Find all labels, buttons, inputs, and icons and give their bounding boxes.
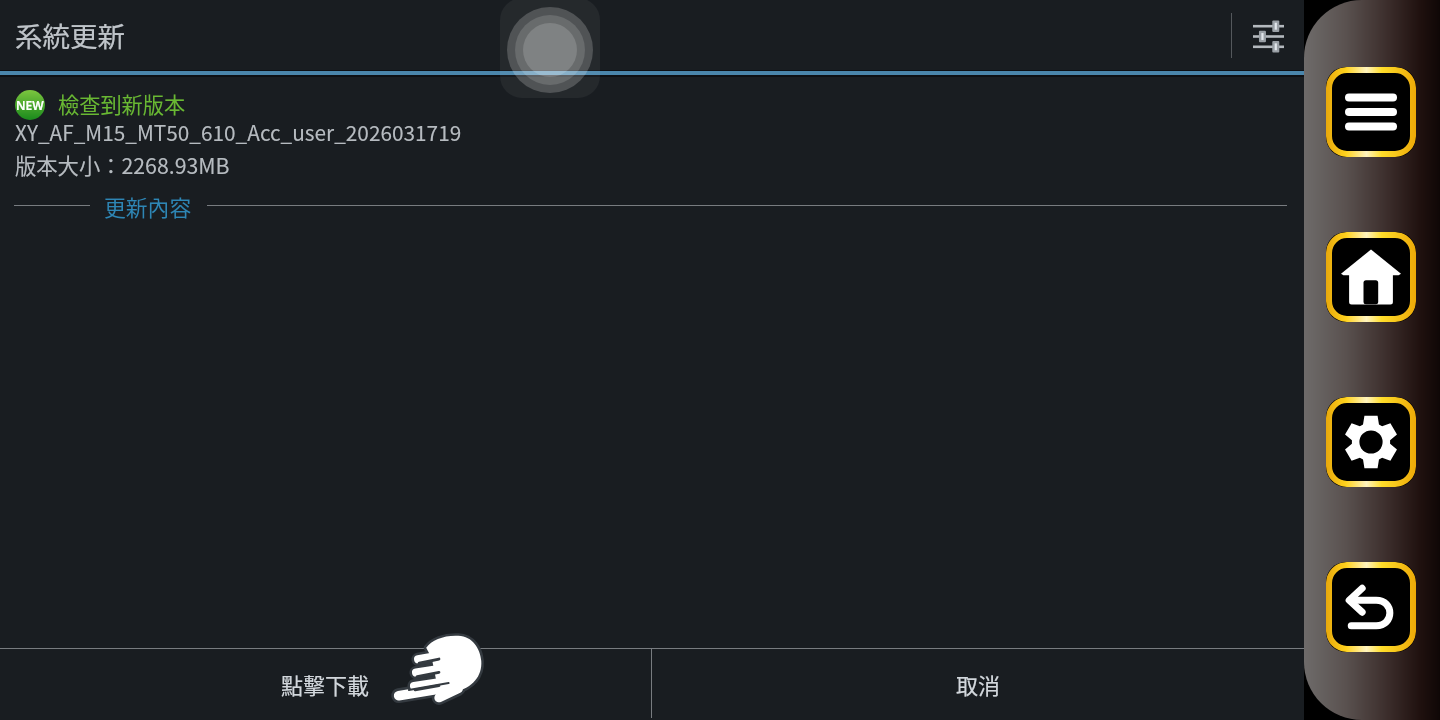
- staticText: 取消: [956, 668, 1001, 700]
- button[interactable]: 點擊下載: [0, 649, 651, 718]
- button[interactable]: Back: [1326, 562, 1416, 652]
- staticText: 系統更新: [15, 15, 125, 55]
- staticText: XY_AF_M15_MT50_610_Acc_user_2026031719: [15, 117, 462, 147]
- button[interactable]: Home: [1326, 232, 1416, 322]
- button[interactable]: 取消: [652, 649, 1304, 718]
- staticText: 更新內容: [104, 191, 192, 219]
- button[interactable]: Menu: [1326, 67, 1416, 157]
- staticText: 版本大小：2268.93MB: [15, 149, 230, 180]
- staticText: 點擊下載: [281, 668, 370, 700]
- staticText: 檢查到新版本: [58, 88, 186, 119]
- button[interactable]: Settings: [1326, 397, 1416, 487]
- staticText: NEW: [16, 97, 44, 113]
- button[interactable]: 更新內容: [14, 191, 1287, 219]
- button[interactable]: Settings: [1240, 8, 1296, 64]
